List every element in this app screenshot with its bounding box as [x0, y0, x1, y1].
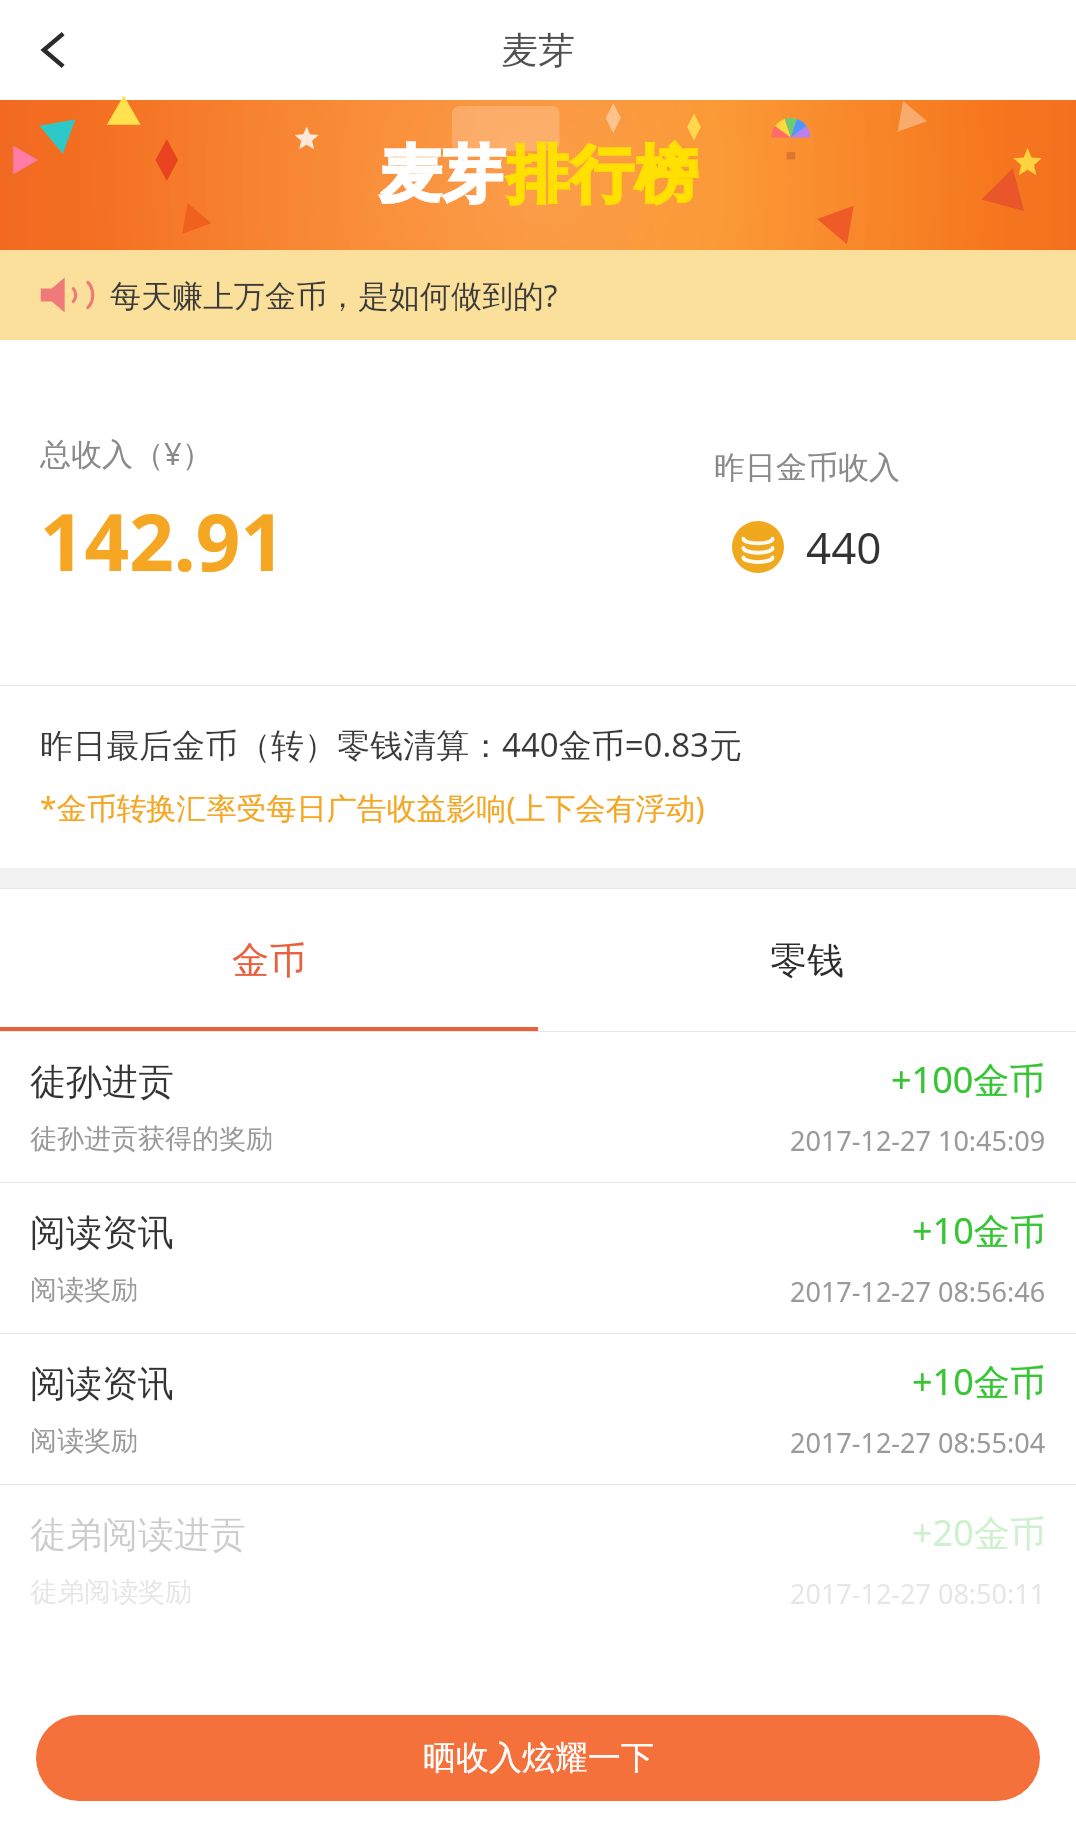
staticText: +20金币 [912, 1508, 1046, 1557]
staticText: 晒收入炫耀一下 [423, 1737, 654, 1779]
button[interactable]: 每天赚上万金币，是如何做到的? [0, 250, 1076, 340]
staticText: 徒孙进贡 [30, 1059, 174, 1104]
staticText: 昨日最后金币（转）零钱清算：440金币=0.83元 [40, 722, 742, 767]
staticText: 阅读资讯 [30, 1361, 174, 1406]
staticText: 徒孙进贡获得的奖励 [30, 1122, 273, 1156]
staticText: 总收入（¥） [40, 432, 213, 474]
staticText: 零钱 [770, 937, 844, 984]
staticText: 440 [806, 517, 882, 577]
button[interactable]: 阅读资讯 [0, 1334, 1076, 1484]
staticText: 阅读奖励 [30, 1424, 138, 1458]
staticText: 142.91 [40, 488, 285, 594]
staticText: *金币转换汇率受每日广告收益影响(上下会有浮动) [40, 787, 705, 828]
staticText: 每天赚上万金币，是如何做到的? [110, 274, 558, 316]
staticText: 金币 [232, 937, 306, 984]
button[interactable]: 徒孙进贡 [0, 1032, 1076, 1182]
staticText: 麦芽 [378, 136, 506, 214]
button[interactable]: 徒弟阅读进贡 [0, 1485, 1076, 1635]
button[interactable]: 零钱 [538, 889, 1076, 1031]
staticText: 排行榜 [506, 136, 698, 214]
staticText: 徒弟阅读进贡 [30, 1512, 246, 1557]
button[interactable]: 麦芽排行榜 banner [0, 100, 1076, 250]
staticText: 麦芽 [501, 27, 575, 74]
button[interactable]: 晒收入炫耀一下 [36, 1715, 1040, 1801]
staticText: +10金币 [912, 1206, 1046, 1255]
staticText: +10金币 [912, 1357, 1046, 1406]
button[interactable]: 阅读资讯 [0, 1183, 1076, 1333]
button[interactable]: 金币 [0, 889, 538, 1031]
staticText: 2017-12-27 08:50:11 [790, 1575, 1046, 1612]
staticText: +100金币 [891, 1055, 1046, 1104]
staticText: 2017-12-27 08:56:46 [790, 1273, 1046, 1310]
staticText: 阅读奖励 [30, 1273, 138, 1307]
staticText: 昨日金币收入 [714, 448, 900, 487]
button[interactable]: Back [18, 14, 90, 86]
staticText: 徒弟阅读奖励 [30, 1575, 192, 1609]
staticText: 2017-12-27 10:45:09 [790, 1122, 1046, 1159]
staticText: 阅读资讯 [30, 1210, 174, 1255]
staticText: 2017-12-27 08:55:04 [790, 1424, 1046, 1461]
